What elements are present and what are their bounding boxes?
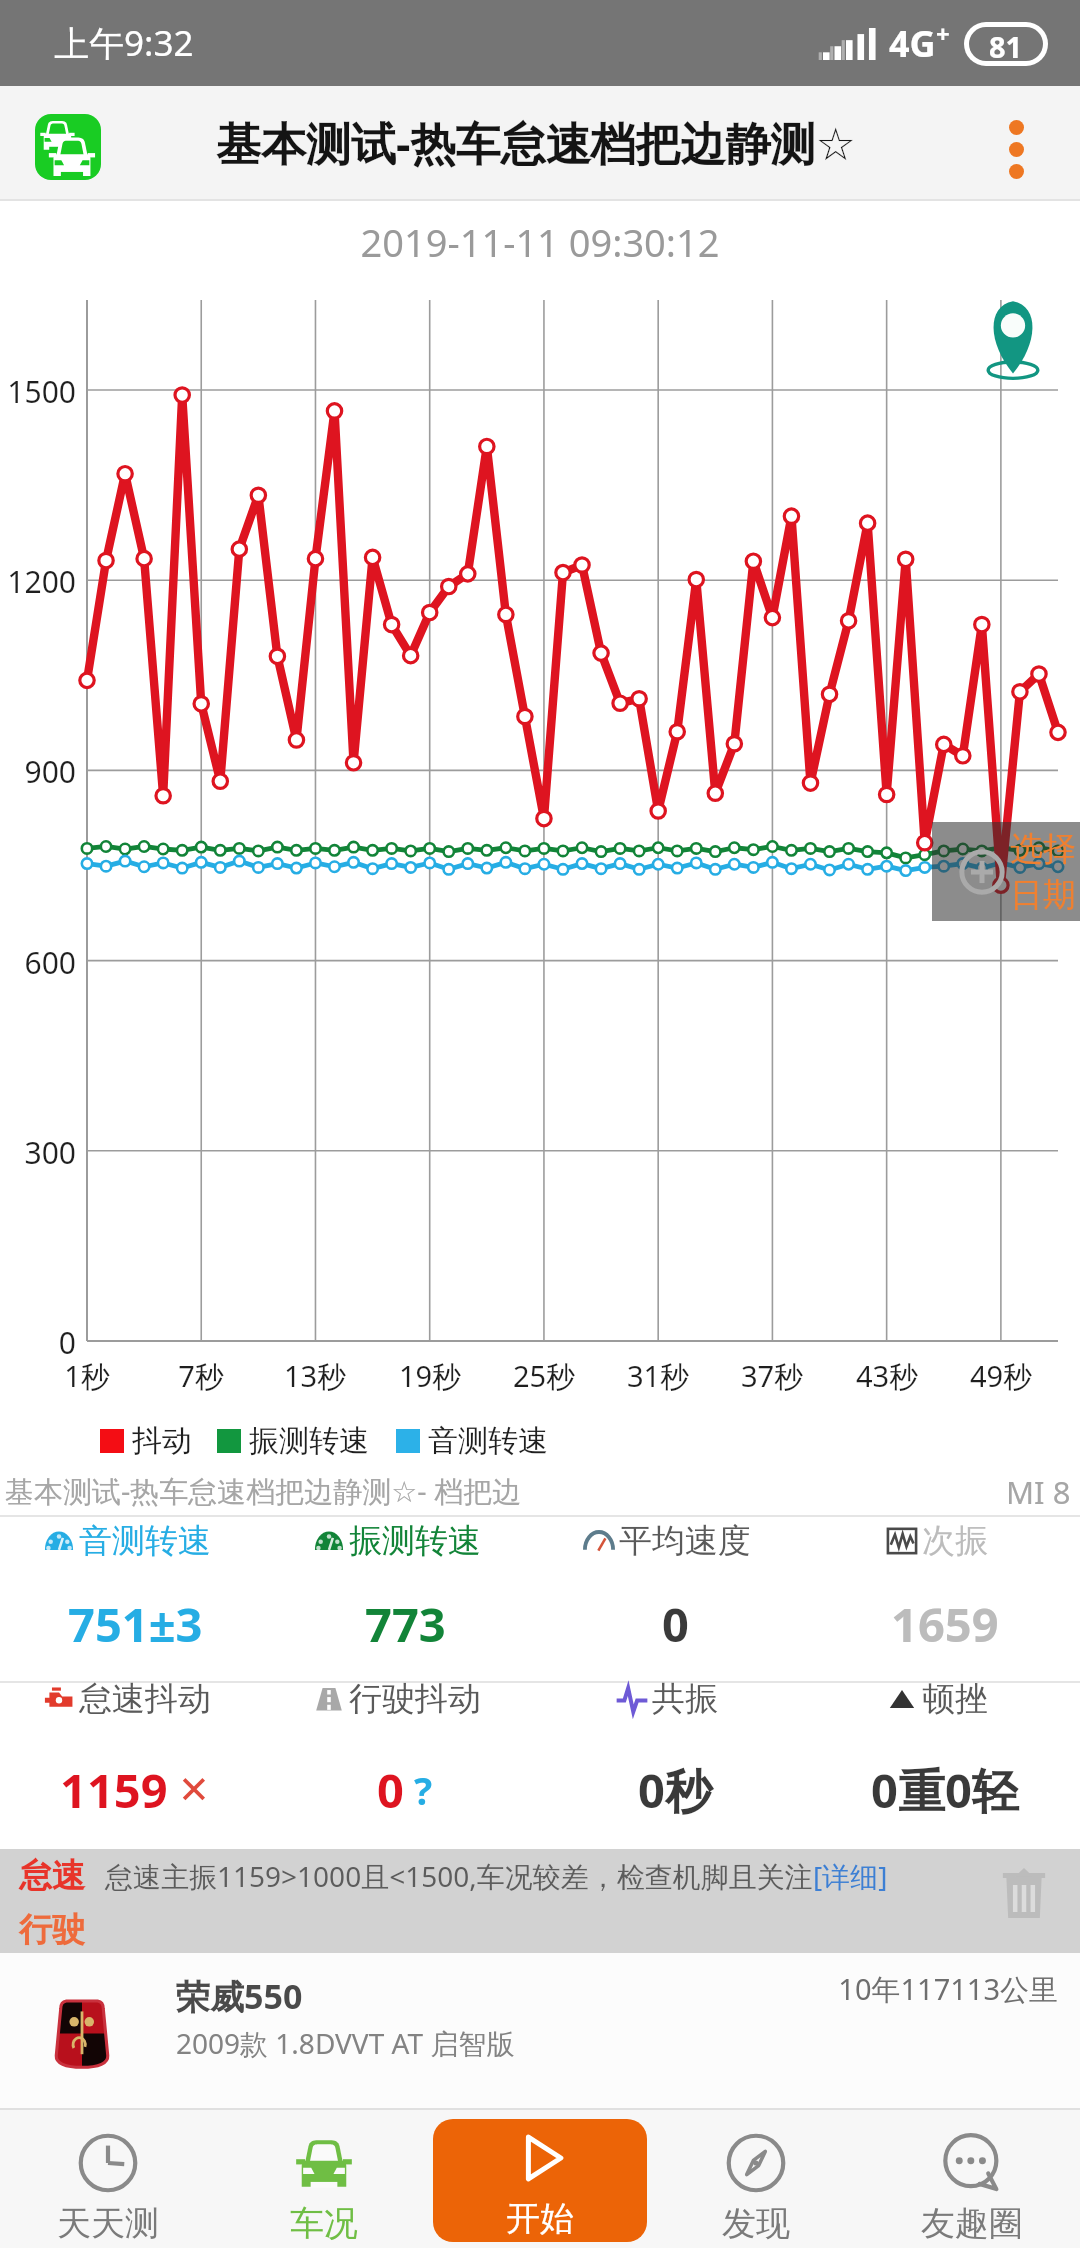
button[interactable]: 友趣圈	[864, 2110, 1080, 2248]
staticText: 音测转速	[428, 1422, 548, 1460]
button[interactable]: Location	[986, 298, 1040, 380]
button[interactable]: 发现	[648, 2110, 864, 2248]
button[interactable]: 怠速抖动	[0, 1668, 262, 1730]
staticText: MI 8	[1006, 1471, 1071, 1509]
staticText: 900	[0, 751, 76, 792]
staticText: 次振	[922, 1520, 988, 1562]
staticText: 1659	[891, 1592, 999, 1656]
button[interactable]: 振测转速	[262, 1510, 532, 1572]
staticText: 10年117113公里	[0, 1969, 1058, 2009]
staticText: 顿挫	[922, 1678, 988, 1720]
staticText: 37秒	[722, 1356, 822, 1396]
staticText: 行驶抖动	[349, 1678, 481, 1720]
staticText: 振测转速	[249, 1422, 369, 1460]
staticText: 0	[0, 1322, 76, 1363]
button[interactable]: 音测转速	[0, 1510, 262, 1572]
staticText: 81	[989, 27, 1023, 61]
button[interactable]: App icon	[35, 114, 101, 180]
staticText: 抖动	[132, 1422, 192, 1460]
staticText: ✕	[178, 1768, 210, 1812]
staticText: 0	[662, 1592, 689, 1656]
staticText: 13秒	[265, 1356, 365, 1396]
staticText: 7秒	[151, 1356, 251, 1396]
staticText: 600	[0, 942, 76, 983]
staticText: 基本测试-热车怠速档把边静测☆	[216, 112, 856, 173]
staticText: 音测转速	[79, 1520, 211, 1562]
staticText: 0秒	[638, 1758, 712, 1822]
button[interactable]: Delete	[1002, 1868, 1046, 1918]
staticText: 友趣圈	[921, 2202, 1023, 2245]
staticText: 2019-11-11 09:30:12	[0, 216, 1080, 268]
staticText: 荣威550	[176, 1973, 303, 2019]
staticText: 25秒	[494, 1356, 594, 1396]
button[interactable]: [详细]	[813, 1857, 888, 1895]
staticText: 平均速度	[619, 1520, 751, 1562]
staticText: 选择	[1010, 828, 1076, 870]
staticText: 31秒	[608, 1356, 708, 1396]
button[interactable]: 顿挫	[802, 1668, 1072, 1730]
button[interactable]: 天天测	[0, 2110, 216, 2248]
staticText: 发现	[722, 2202, 790, 2245]
staticText: 300	[0, 1132, 76, 1173]
button[interactable]: 行驶抖动	[262, 1668, 532, 1730]
staticText: 怠速抖动	[79, 1678, 211, 1720]
staticText: 1秒	[37, 1356, 137, 1396]
staticText: 2009款 1.8DVVT AT 启智版	[176, 2024, 515, 2062]
button[interactable]: Select date	[932, 822, 1080, 921]
staticText: 天天测	[57, 2202, 159, 2245]
staticText: 0	[377, 1758, 404, 1822]
staticText: 1159	[60, 1758, 168, 1822]
staticText: 1200	[0, 561, 76, 602]
staticText: 基本测试-热车怠速档把边静测☆- 档把边	[5, 1471, 522, 1509]
staticText: 开始	[506, 2197, 574, 2240]
staticText: ?	[414, 1764, 433, 1816]
button[interactable]: More options	[999, 110, 1034, 189]
staticText: 行驶	[19, 1909, 85, 1951]
staticText: 43秒	[837, 1356, 937, 1396]
staticText: 怠速主振1159>1000且<1500,车况较差，检查机脚且关注	[105, 1857, 813, 1895]
staticText: 49秒	[951, 1356, 1051, 1396]
button[interactable]: 平均速度	[532, 1510, 802, 1572]
button[interactable]: 次振	[802, 1510, 1072, 1572]
staticText: 上午9:32	[54, 19, 194, 67]
staticText: 1500	[0, 371, 76, 412]
staticText: 773	[365, 1592, 446, 1656]
staticText: 车况	[290, 2202, 358, 2245]
staticText: 4G	[889, 19, 936, 68]
staticText: 0重0轻	[871, 1758, 1019, 1822]
staticText: +	[936, 17, 950, 50]
button[interactable]: 车况	[216, 2110, 432, 2248]
staticText: 751±3	[68, 1592, 203, 1656]
staticText: 共振	[652, 1678, 718, 1720]
staticText: 振测转速	[349, 1520, 481, 1562]
staticText: 日期	[1010, 874, 1076, 916]
button[interactable]: 开始	[433, 2119, 647, 2242]
button[interactable]: 共振	[532, 1668, 802, 1730]
staticText: 怠速	[19, 1855, 85, 1897]
button[interactable]: 荣威550	[0, 1953, 1080, 2108]
staticText: 19秒	[380, 1356, 480, 1396]
